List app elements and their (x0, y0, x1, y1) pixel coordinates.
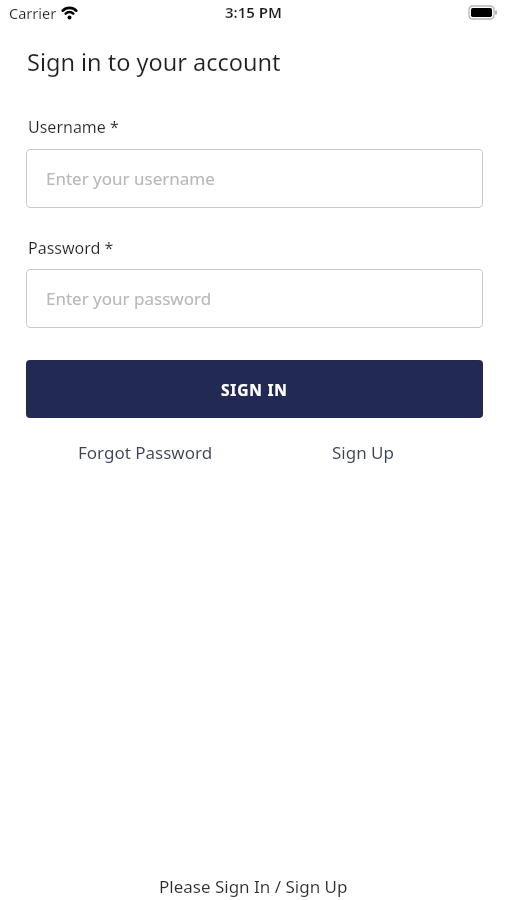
button[interactable]: Forgot Password (70, 433, 221, 472)
staticText: Username * (28, 116, 119, 138)
staticText: Password * (28, 237, 114, 259)
staticText: Enter your username (46, 167, 215, 190)
button[interactable]: Sign Up (324, 433, 402, 472)
staticText: Sign in to your account (27, 46, 281, 78)
staticText: 3:15 PM (225, 2, 282, 22)
staticText: Carrier (9, 3, 57, 23)
button[interactable]: Enter your username (26, 149, 483, 208)
button[interactable]: SIGN IN (26, 360, 483, 418)
staticText: Please Sign In / Sign Up (159, 875, 348, 898)
staticText: Forgot Password (78, 441, 213, 464)
staticText: SIGN IN (221, 379, 288, 400)
staticText: Sign Up (332, 441, 394, 464)
staticText: Enter your password (46, 287, 212, 310)
button[interactable]: Enter your password (26, 269, 483, 328)
